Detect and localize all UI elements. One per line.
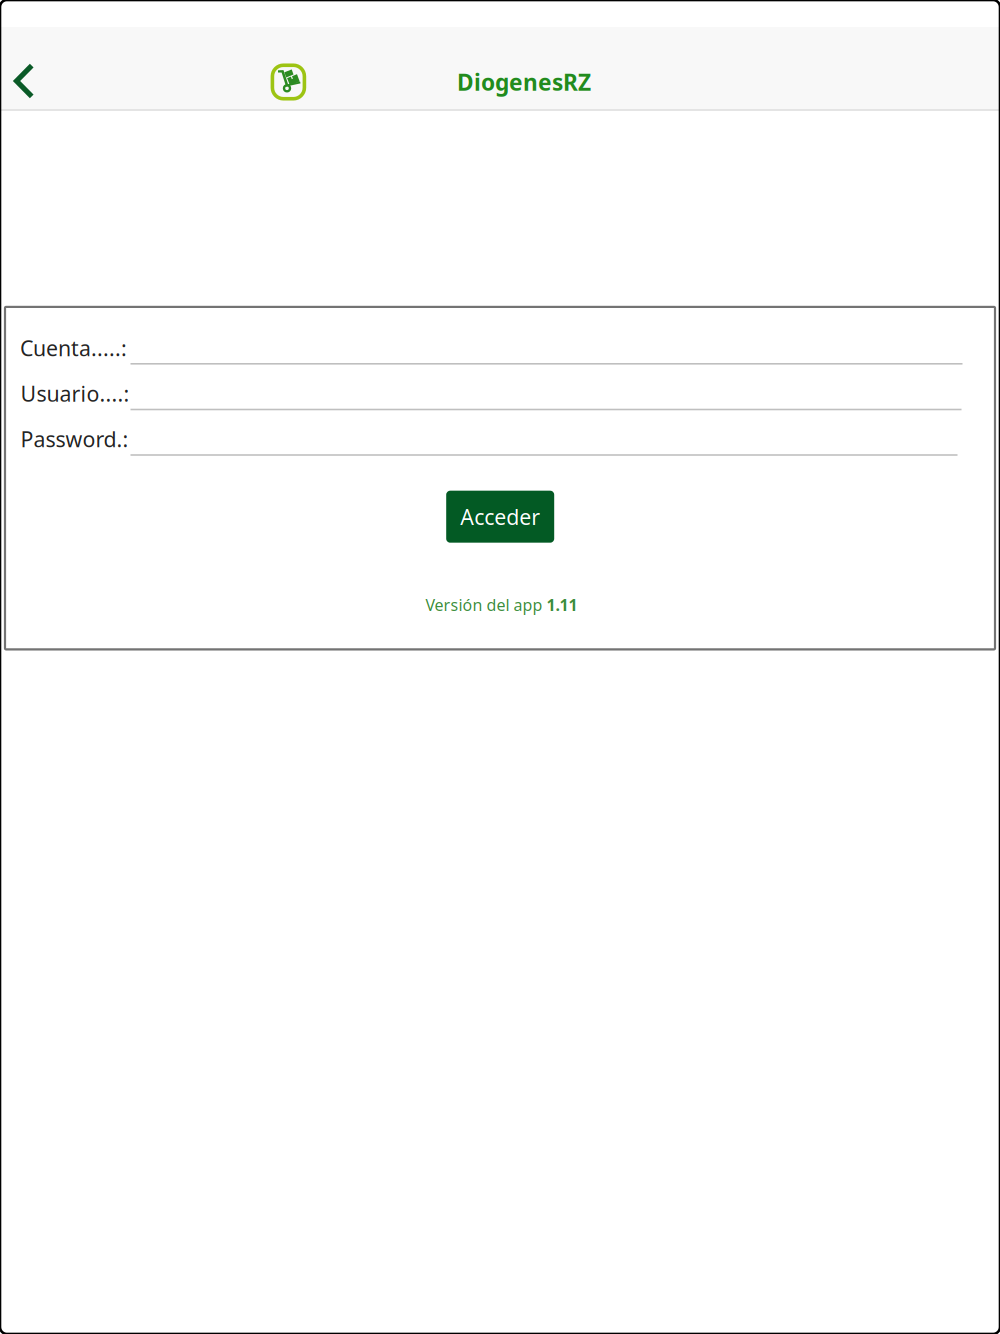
staticText: Usuario....: [20,379,129,408]
staticText: 1.11 [546,594,577,615]
staticText: Acceder [460,502,540,531]
staticText: Versión del app [425,594,542,615]
button[interactable]: Back [0,46,52,116]
staticText: DiogenesRZ [457,67,591,97]
button[interactable]: Cuenta [130,338,962,365]
button[interactable]: Acceder [446,491,554,543]
staticText: Cuenta.....: [20,334,127,362]
button[interactable]: Usuario [130,383,961,410]
button[interactable]: Password [130,429,957,456]
staticText: Password.: [20,425,128,453]
